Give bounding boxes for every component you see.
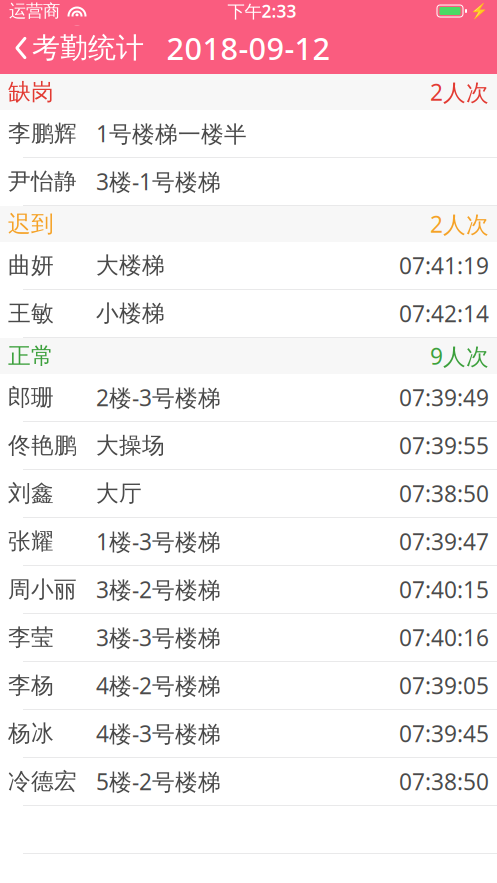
staticText: ⚡: [470, 3, 488, 19]
staticText: 07:39:49: [399, 382, 489, 412]
staticText: 大厅: [96, 480, 142, 507]
staticText: 正常: [8, 342, 54, 370]
staticText: 王敏: [8, 300, 54, 327]
staticText: 杨冰: [8, 720, 54, 747]
staticText: 迟到: [8, 210, 54, 238]
staticText: 07:42:14: [399, 298, 489, 328]
button[interactable]: 佟艳鹏: [0, 422, 497, 470]
staticText: 下午2:33: [227, 0, 296, 22]
staticText: 07:39:47: [399, 526, 489, 556]
staticText: 冷德宏: [8, 768, 77, 795]
staticText: 考勤统计: [32, 31, 144, 65]
button[interactable]: 李莹: [0, 614, 497, 662]
staticText: 07:41:19: [399, 250, 489, 280]
button[interactable]: 杨冰: [0, 710, 497, 758]
staticText: 刘鑫: [8, 480, 54, 507]
staticText: 07:40:16: [399, 622, 489, 652]
staticText: 2018-09-12: [166, 28, 330, 68]
button[interactable]: 考勤统计: [0, 25, 144, 71]
staticText: 3楼-3号楼梯: [96, 622, 221, 652]
staticText: 2人次: [430, 77, 489, 107]
staticText: 2人次: [430, 209, 489, 239]
staticText: 李杨: [8, 672, 54, 699]
staticText: 2楼-3号楼梯: [96, 382, 221, 412]
staticText: 07:38:50: [399, 766, 489, 796]
staticText: 运营商: [9, 0, 60, 22]
staticText: 曲妍: [8, 252, 54, 279]
staticText: 大楼梯: [96, 252, 165, 279]
staticText: 4楼-3号楼梯: [96, 718, 221, 748]
staticText: 李鹏辉: [8, 120, 77, 147]
button[interactable]: 冷德宏: [0, 758, 497, 806]
button[interactable]: 曲妍: [0, 242, 497, 290]
staticText: 张耀: [8, 528, 54, 555]
staticText: 3楼-1号楼梯: [96, 166, 221, 196]
staticText: 佟艳鹏: [8, 432, 77, 459]
staticText: 1楼-3号楼梯: [96, 526, 221, 556]
staticText: 9人次: [430, 341, 489, 371]
button[interactable]: 周小丽: [0, 566, 497, 614]
staticText: 1号楼梯一楼半: [96, 118, 247, 148]
button[interactable]: 李杨: [0, 662, 497, 710]
button[interactable]: 王敏: [0, 290, 497, 338]
button[interactable]: 郎珊: [0, 374, 497, 422]
staticText: 4楼-2号楼梯: [96, 670, 221, 700]
staticText: 尹怡静: [8, 168, 77, 195]
button[interactable]: 李鹏辉: [0, 110, 497, 158]
staticText: 07:39:55: [399, 430, 489, 460]
staticText: 郎珊: [8, 384, 54, 411]
staticText: 07:38:50: [399, 478, 489, 508]
button[interactable]: 刘鑫: [0, 470, 497, 518]
button[interactable]: 尹怡静: [0, 158, 497, 206]
staticText: 07:40:15: [399, 574, 489, 604]
staticText: 大操场: [96, 432, 165, 459]
staticText: 李莹: [8, 624, 54, 651]
staticText: 缺岗: [8, 78, 54, 106]
staticText: 3楼-2号楼梯: [96, 574, 221, 604]
staticText: 07:39:45: [399, 718, 489, 748]
staticText: 小楼梯: [96, 300, 165, 327]
staticText: 周小丽: [8, 576, 77, 603]
staticText: 5楼-2号楼梯: [96, 766, 221, 796]
staticText: 07:39:05: [399, 670, 489, 700]
button[interactable]: 张耀: [0, 518, 497, 566]
